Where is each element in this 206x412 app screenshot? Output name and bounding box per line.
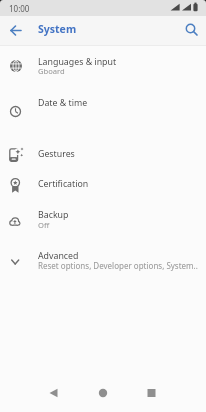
staticText: System xyxy=(38,22,77,36)
staticText: Gboard xyxy=(38,66,65,76)
button[interactable]: Languages & input xyxy=(0,48,206,84)
button[interactable] xyxy=(176,16,206,46)
staticText: Gestures xyxy=(38,148,75,160)
button[interactable] xyxy=(137,378,167,408)
button[interactable] xyxy=(38,378,68,408)
button[interactable] xyxy=(88,378,118,408)
staticText: Advanced xyxy=(38,250,79,262)
button[interactable]: Certification xyxy=(0,170,206,198)
button[interactable]: Gestures xyxy=(0,140,206,168)
staticText: 10:00 xyxy=(9,3,30,14)
button[interactable]: Date & time xyxy=(0,88,206,122)
staticText: Languages & input xyxy=(38,56,117,68)
staticText: Certification xyxy=(38,178,89,190)
staticText: Date & time xyxy=(38,97,88,109)
button[interactable]: Advanced xyxy=(0,245,206,275)
staticText: Backup xyxy=(38,209,69,221)
button[interactable]: Backup xyxy=(0,201,206,237)
button[interactable] xyxy=(0,16,30,46)
staticText: Reset options, Developer options, System… xyxy=(38,260,198,271)
staticText: Off xyxy=(38,220,50,230)
